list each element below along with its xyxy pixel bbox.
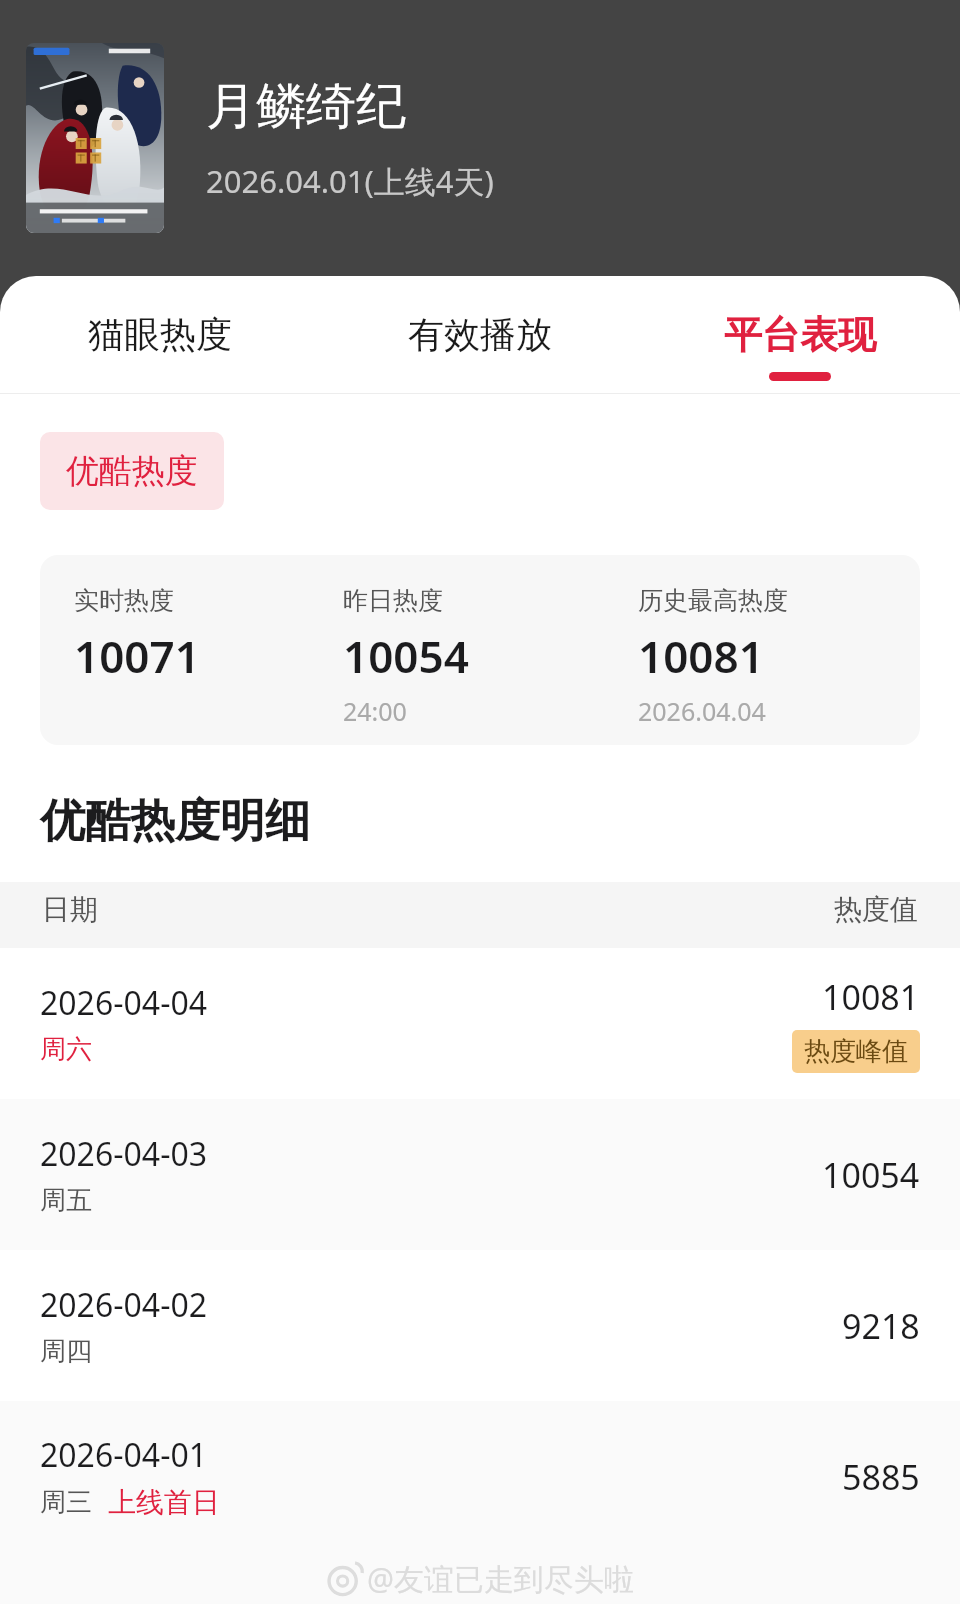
- staticText: 10081: [638, 626, 764, 686]
- staticText: 10054: [822, 1152, 920, 1198]
- staticText: @友谊已走到尽头啦: [367, 1558, 634, 1599]
- staticText: 2026.04.01(上线4天): [206, 160, 494, 202]
- staticText: 上线首日: [108, 1485, 220, 1520]
- staticText: 优酷热度: [66, 450, 198, 492]
- button[interactable]: 剧集海报: [26, 43, 164, 233]
- staticText: 10081: [822, 974, 920, 1020]
- staticText: 2026-04-01: [40, 1433, 208, 1477]
- staticText: 周三: [40, 1486, 92, 1519]
- staticText: 24:00: [343, 694, 407, 728]
- button[interactable]: 有效播放: [320, 276, 640, 393]
- button[interactable]: 2026-04-02: [0, 1250, 960, 1401]
- staticText: 月鳞绮纪: [206, 75, 406, 138]
- staticText: 猫眼热度: [88, 312, 232, 357]
- staticText: 热度值: [834, 892, 918, 927]
- staticText: 2026-04-02: [40, 1283, 208, 1327]
- staticText: 周四: [40, 1335, 92, 1368]
- staticText: 实时热度: [74, 585, 174, 616]
- staticText: 周六: [40, 1033, 92, 1066]
- staticText: 10071: [74, 626, 200, 686]
- staticText: 2026.04.04: [638, 694, 766, 728]
- button[interactable]: 2026-04-03: [0, 1099, 960, 1250]
- staticText: 5885: [842, 1454, 920, 1500]
- staticText: 平台表现: [724, 311, 876, 359]
- staticText: 2026-04-03: [40, 1132, 208, 1176]
- staticText: 日期: [42, 892, 98, 927]
- staticText: 9218: [842, 1303, 920, 1349]
- button[interactable]: 2026-04-04: [0, 948, 960, 1099]
- staticText: 昨日热度: [343, 585, 443, 616]
- staticText: 有效播放: [408, 312, 552, 357]
- staticText: 历史最高热度: [638, 585, 788, 616]
- staticText: 周五: [40, 1184, 92, 1217]
- button[interactable]: 猫眼热度: [0, 276, 320, 393]
- button[interactable]: 平台表现: [640, 276, 960, 393]
- staticText: 10054: [343, 626, 469, 686]
- staticText: 热度峰值: [804, 1035, 908, 1068]
- button[interactable]: 优酷热度: [40, 432, 224, 510]
- button[interactable]: 2026-04-01: [0, 1401, 960, 1552]
- staticText: 2026-04-04: [40, 981, 208, 1025]
- staticText: 优酷热度明细: [40, 793, 310, 850]
